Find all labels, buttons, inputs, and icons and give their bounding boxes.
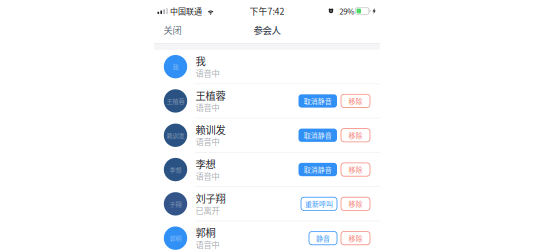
staticText: 移除 xyxy=(348,96,362,106)
staticText: 移除 xyxy=(348,164,362,174)
staticText: 赖训发 xyxy=(166,131,184,140)
button[interactable]: 取消静音 xyxy=(298,94,337,108)
staticText: 子翔 xyxy=(169,199,181,208)
staticText: 语音中 xyxy=(196,238,220,250)
staticText: 取消静音 xyxy=(304,130,332,140)
staticText: 静音 xyxy=(316,233,330,243)
staticText: 重新呼叫 xyxy=(305,199,333,209)
staticText: 移除 xyxy=(348,130,362,140)
button[interactable]: 移除 xyxy=(341,129,370,142)
staticText: 移除 xyxy=(348,233,362,243)
staticText: 李想 xyxy=(169,165,181,174)
button[interactable]: 取消静音 xyxy=(298,129,337,142)
staticText: 刘子翔 xyxy=(196,191,226,205)
button[interactable]: 移除 xyxy=(341,94,370,108)
button[interactable]: 移除 xyxy=(341,231,370,245)
staticText: 取消静音 xyxy=(304,164,332,174)
button[interactable]: 移除 xyxy=(341,197,370,210)
staticText: 语音中 xyxy=(196,170,220,182)
staticText: 语音中 xyxy=(196,67,220,79)
staticText: 郭桐 xyxy=(196,225,216,240)
staticText: 下午7:42 xyxy=(249,5,284,17)
staticText: 取消静音 xyxy=(304,96,332,106)
staticText: 郭桐 xyxy=(169,234,181,243)
staticText: 移除 xyxy=(348,199,362,209)
button[interactable]: 取消静音 xyxy=(298,163,337,176)
staticText: 语音中 xyxy=(196,101,220,113)
staticText: 参会人 xyxy=(253,23,280,37)
staticText: 已离开 xyxy=(196,204,220,216)
staticText: 关闭 xyxy=(164,23,182,36)
staticText: 王植蓉 xyxy=(166,96,184,105)
staticText: 我 xyxy=(196,53,206,68)
button[interactable]: 关闭 xyxy=(154,21,192,43)
button[interactable]: 重新呼叫 xyxy=(301,197,337,210)
staticText: 我 xyxy=(172,62,178,71)
button[interactable]: 移除 xyxy=(341,163,370,176)
staticText: 29% xyxy=(339,5,354,17)
staticText: 李想 xyxy=(196,156,216,171)
staticText: 赖训发 xyxy=(196,122,226,137)
staticText: 王植蓉 xyxy=(196,88,226,103)
staticText: 语音中 xyxy=(196,135,220,147)
button[interactable]: 静音 xyxy=(309,231,337,245)
staticText: 中国联通 xyxy=(170,5,202,17)
